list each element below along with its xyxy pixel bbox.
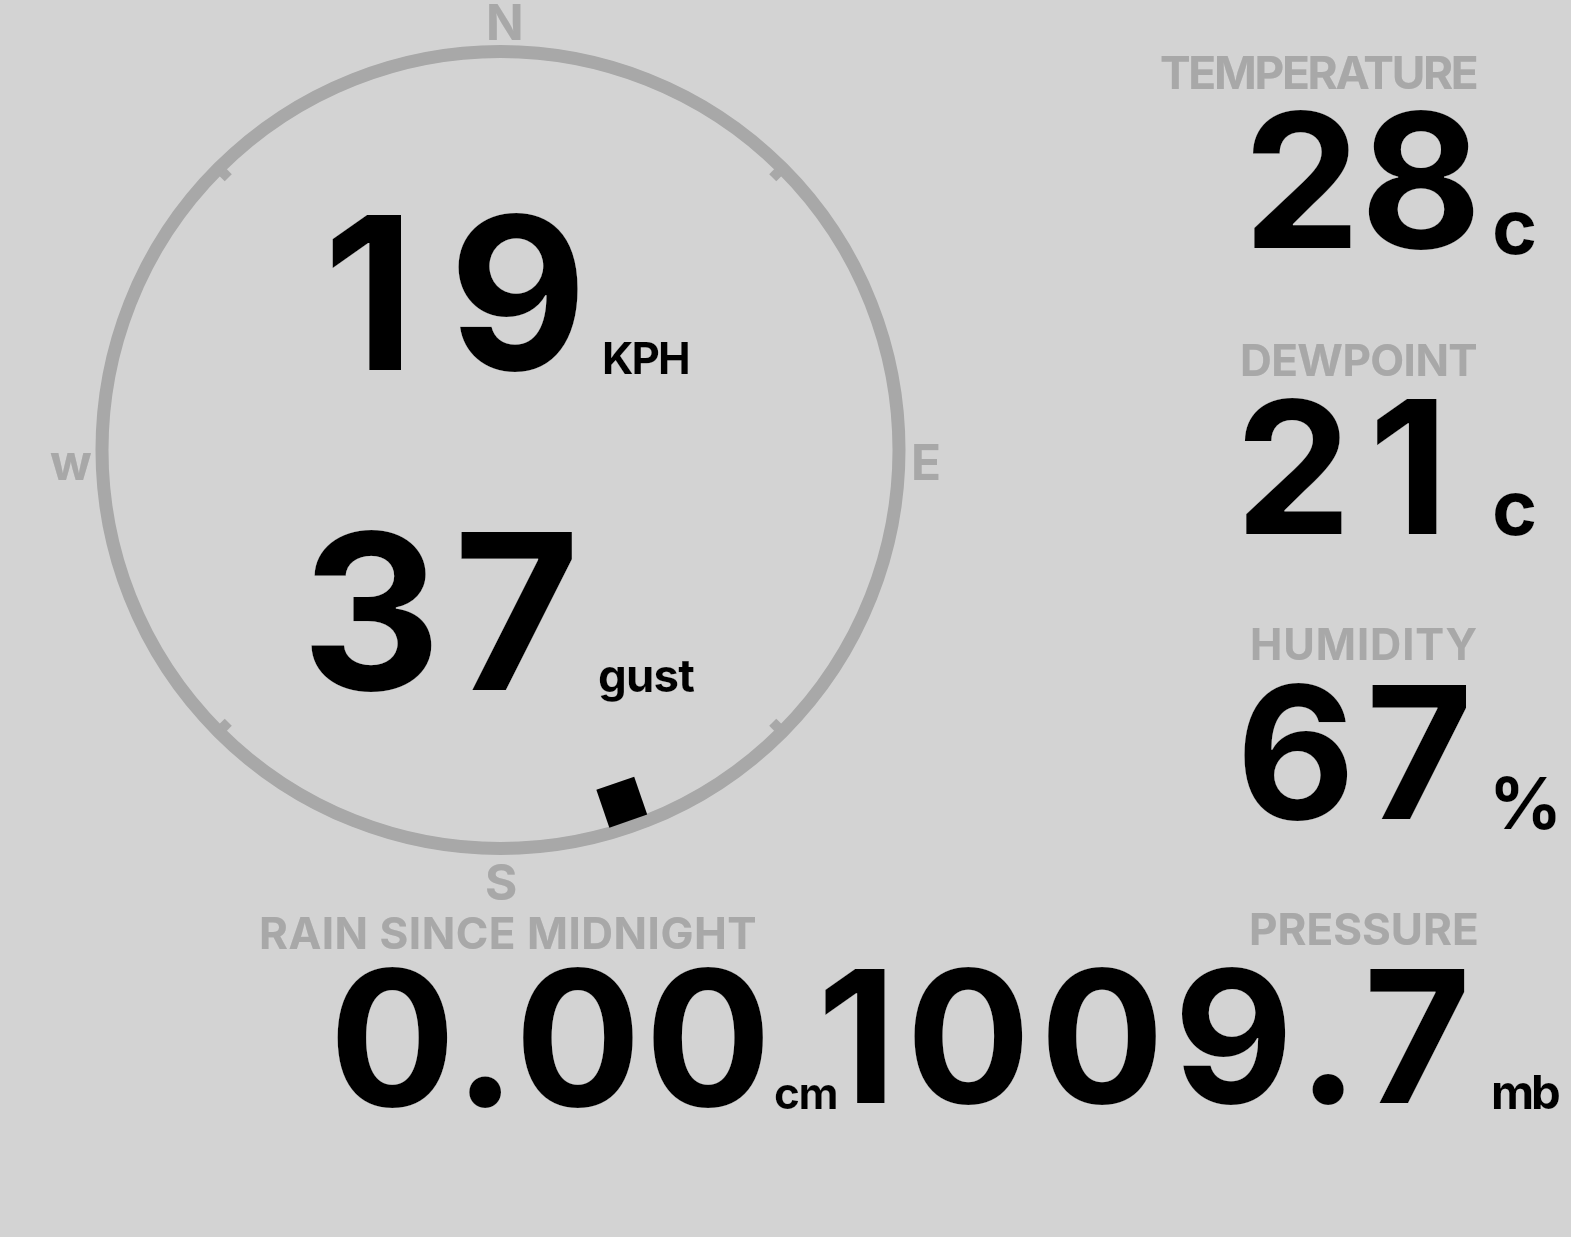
staticText: c (1492, 180, 1538, 273)
staticText: PRESSURE (1249, 902, 1479, 955)
button[interactable]: Pressure 1009.7 mb (855, 900, 1565, 1115)
staticText: mb (1491, 1063, 1558, 1120)
staticText: S (485, 852, 518, 912)
staticText: 28 (1243, 67, 1482, 293)
button[interactable]: Dew point 21 degrees C (1150, 328, 1560, 556)
staticText: KPH (602, 332, 689, 385)
staticText: w (50, 432, 92, 491)
staticText: 21 (1235, 355, 1466, 579)
staticText: E (911, 432, 941, 492)
staticText: c (1492, 461, 1538, 554)
button[interactable]: Wind 19 KPH, gusting 37, direction SSE (96, 46, 906, 856)
staticText: gust (598, 648, 694, 703)
button[interactable]: Temperature 28 degrees C (1150, 40, 1560, 270)
staticText: % (1489, 759, 1563, 846)
staticText: cm (774, 1066, 838, 1119)
staticText: N (486, 0, 524, 52)
staticText: TEMPERATURE (1160, 45, 1477, 101)
staticText: 1009.7 (817, 924, 1481, 1148)
staticText: DEWPOINT (1240, 333, 1478, 386)
staticText: 67 (1236, 641, 1483, 864)
button[interactable]: Rain since midnight 0.00 cm (250, 900, 850, 1115)
staticText: RAIN SINCE MIDNIGHT (259, 906, 758, 959)
staticText: 0.00 (329, 924, 775, 1151)
button[interactable]: Humidity 67 percent (1150, 612, 1560, 840)
staticText: HUMIDITY (1250, 618, 1479, 670)
staticText: 19 (323, 163, 622, 421)
staticText: 37 (301, 479, 593, 742)
